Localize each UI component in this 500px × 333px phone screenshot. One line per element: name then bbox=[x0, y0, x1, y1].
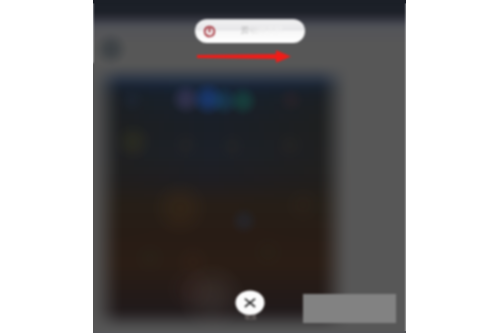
button[interactable]: 滑动来关机 bbox=[195, 19, 305, 43]
staticText: 滑动来关机 bbox=[241, 25, 284, 36]
staticText: 取消 bbox=[245, 314, 256, 321]
button[interactable]: Cancel bbox=[234, 289, 266, 325]
